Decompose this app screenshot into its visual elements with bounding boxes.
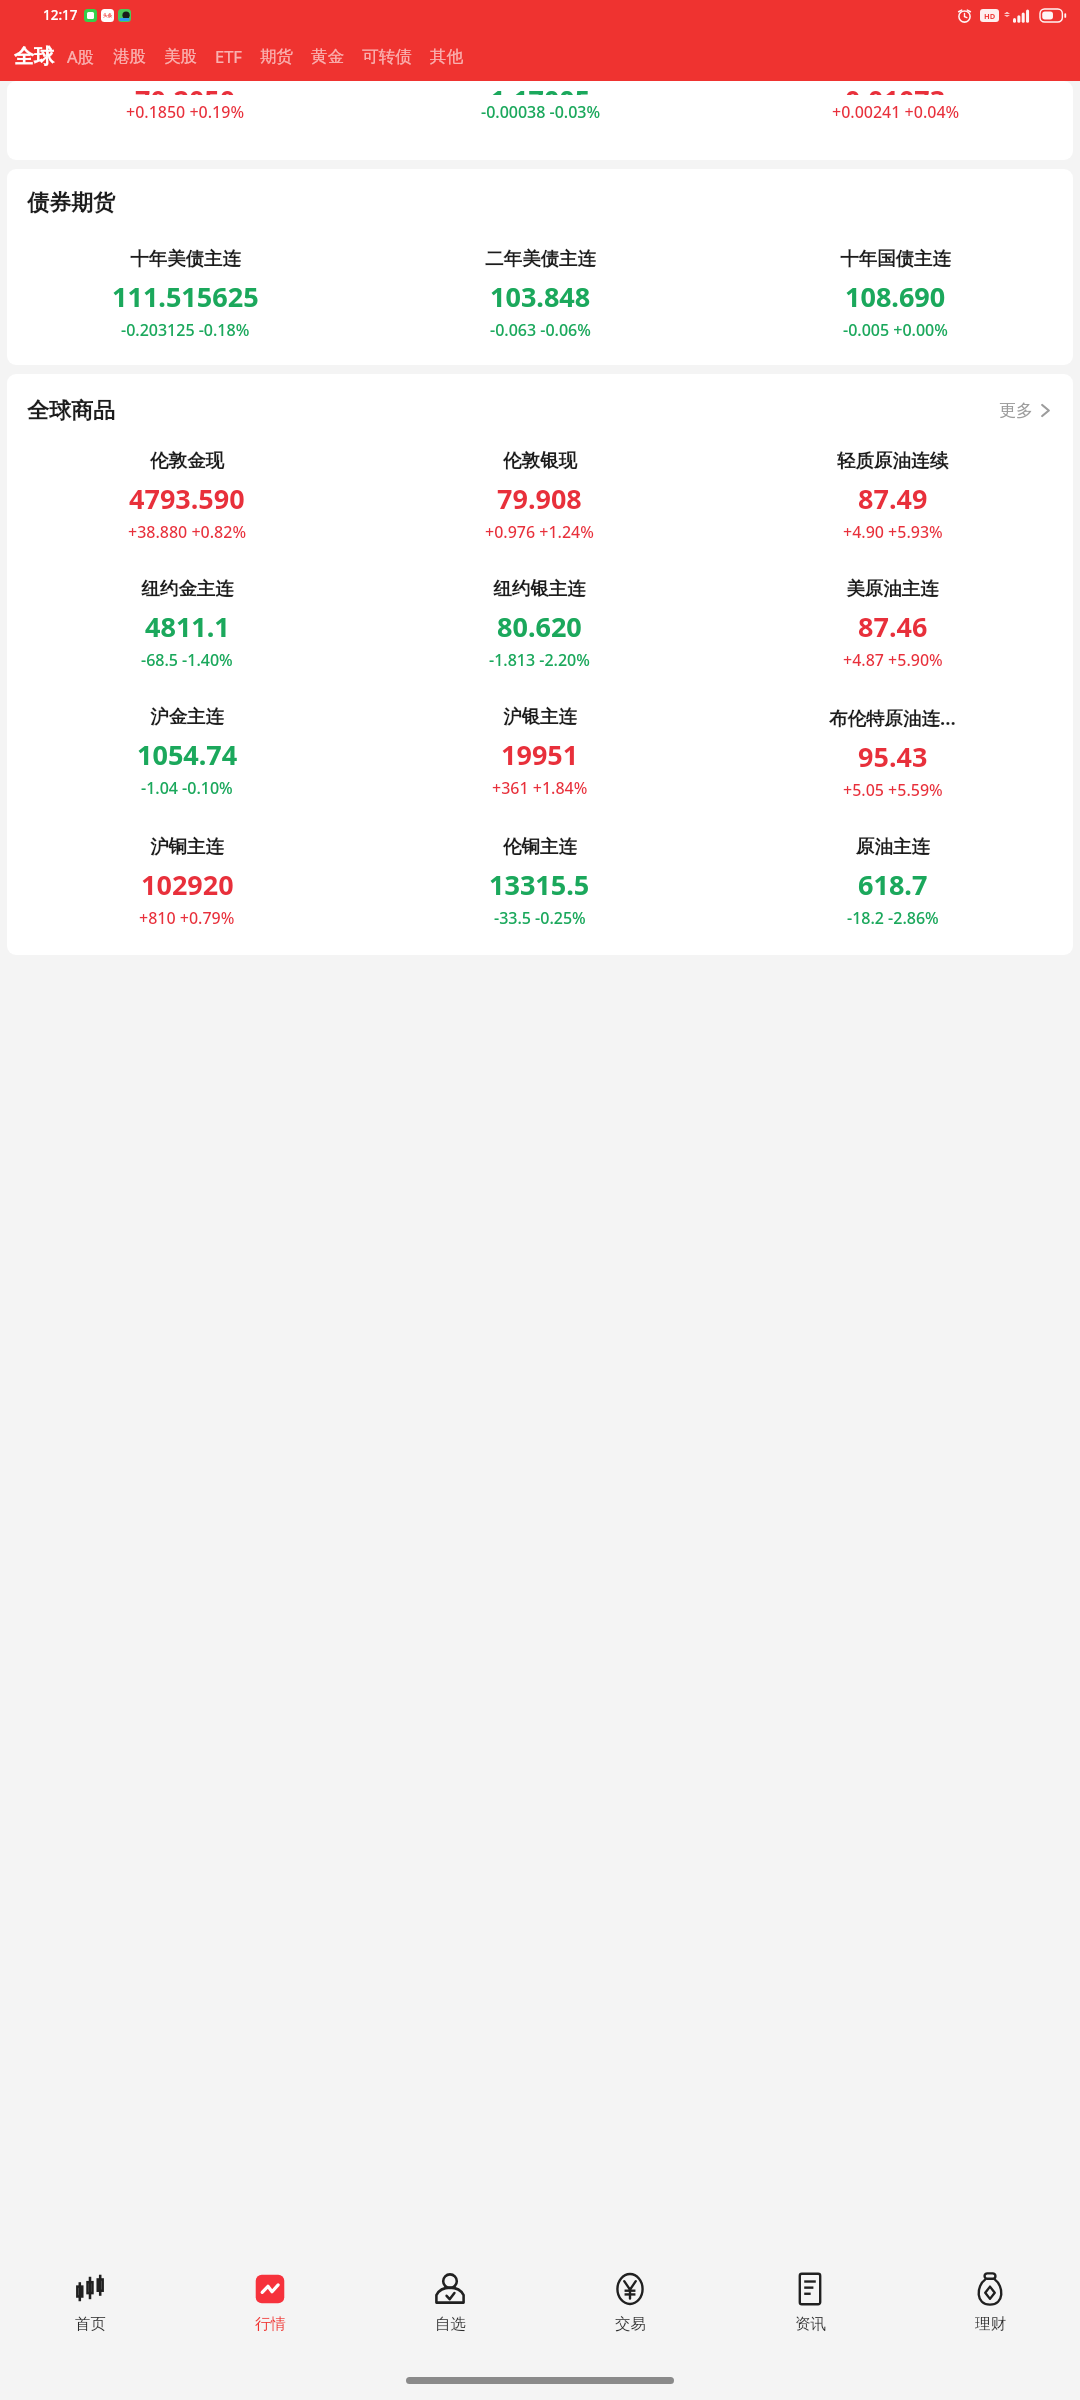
button[interactable]: 沪铜主连	[11, 835, 363, 929]
button[interactable]: 伦铜主连	[363, 835, 716, 929]
staticText: 伦铜主连	[503, 835, 577, 858]
button[interactable]: 纽约银主连	[363, 577, 716, 671]
button[interactable]: 自选	[360, 2266, 540, 2361]
button[interactable]: A股	[58, 39, 104, 74]
staticText: -1.813 -2.20%	[489, 649, 590, 671]
staticText: 伦敦银现	[503, 449, 577, 472]
staticText: 13315.5	[489, 866, 590, 903]
staticText: 19951	[501, 736, 579, 773]
staticText: 1054.74	[137, 736, 238, 773]
staticText: 可转债	[362, 46, 412, 67]
staticText: 沪铜主连	[150, 835, 224, 858]
button[interactable]: 二年美债主连	[363, 247, 718, 341]
staticText: 交易	[615, 2314, 646, 2334]
staticText: 十年国债主连	[840, 247, 951, 270]
staticText: 12:17	[43, 6, 78, 24]
staticText: A股	[67, 45, 95, 68]
staticText: 108.690	[845, 278, 946, 315]
staticText: 纽约金主连	[141, 577, 234, 600]
staticText: 更多	[999, 400, 1033, 421]
staticText: 87.46	[858, 608, 928, 645]
button[interactable]: 理财	[900, 2266, 1080, 2361]
staticText: -0.203125 -0.18%	[121, 319, 250, 341]
staticText: 纽约银主连	[493, 577, 586, 600]
button[interactable]: ETF	[206, 39, 251, 73]
button[interactable]: 可转债	[353, 40, 421, 73]
staticText: 黄金	[311, 46, 344, 67]
staticText: 沪金主连	[150, 705, 224, 728]
button[interactable]: 纽约金主连	[11, 577, 363, 671]
staticText: +810 +0.79%	[139, 907, 235, 929]
staticText: 首页	[75, 2314, 106, 2334]
button[interactable]: 资讯	[720, 2266, 900, 2361]
staticText: 4811.1	[145, 608, 230, 645]
staticText: 期货	[260, 46, 293, 67]
button[interactable]: 0.01073	[718, 81, 1073, 123]
staticText: +0.00241 +0.04%	[832, 101, 960, 123]
staticText: +0.976 +1.24%	[485, 521, 594, 543]
button[interactable]: 首页	[0, 2266, 180, 2361]
staticText: 618.7	[858, 866, 928, 903]
staticText: 0.01073	[845, 81, 946, 95]
staticText: +0.1850 +0.19%	[126, 101, 245, 123]
button[interactable]: 1.17005	[363, 81, 718, 123]
button[interactable]: 十年美债主连	[7, 247, 363, 341]
button[interactable]: 沪银主连	[363, 705, 716, 799]
staticText: 轻质原油连续	[837, 449, 948, 472]
button[interactable]: 轻质原油连续	[716, 449, 1069, 543]
staticText: 债券期货	[27, 189, 115, 217]
staticText: -68.5 -1.40%	[141, 649, 233, 671]
staticText: 头条	[103, 13, 112, 19]
staticText: HD	[984, 11, 996, 21]
button[interactable]: 原油主连	[716, 835, 1069, 929]
staticText: -18.2 -2.86%	[847, 907, 939, 929]
button[interactable]: 期货	[251, 40, 302, 73]
staticText: 美原油主连	[846, 577, 939, 600]
staticText: 美股	[164, 46, 197, 67]
staticText: 伦敦金现	[150, 449, 224, 472]
staticText: 1.17005	[490, 81, 591, 95]
button[interactable]: 布伦特原油连…	[716, 705, 1069, 801]
staticText: 二年美债主连	[485, 247, 596, 270]
staticText: 全球商品	[27, 397, 115, 425]
staticText: 资讯	[795, 2314, 826, 2334]
staticText: 港股	[113, 46, 146, 67]
button[interactable]: 伦敦银现	[363, 449, 716, 543]
staticText: ETF	[215, 45, 242, 67]
button[interactable]: 行情	[180, 2266, 360, 2361]
staticText: 87.49	[858, 480, 928, 517]
staticText: 原油主连	[856, 835, 930, 858]
staticText: -0.00038 -0.03%	[481, 101, 601, 123]
staticText: 自选	[435, 2314, 466, 2334]
button[interactable]: 伦敦金现	[11, 449, 363, 543]
button[interactable]: 沪金主连	[11, 705, 363, 799]
staticText: -33.5 -0.25%	[494, 907, 586, 929]
staticText: 111.515625	[112, 278, 259, 315]
staticText: 79.908	[497, 480, 582, 517]
button[interactable]: 更多	[993, 394, 1057, 427]
button[interactable]: 全球	[10, 40, 58, 73]
button[interactable]: 美原油主连	[716, 577, 1069, 671]
staticText: 其他	[430, 46, 463, 67]
staticText: +5.05 +5.59%	[843, 779, 943, 801]
button[interactable]: 美股	[155, 40, 206, 73]
staticText: 103.848	[490, 278, 591, 315]
staticText: 95.43	[858, 738, 928, 775]
staticText: 理财	[975, 2314, 1006, 2334]
button[interactable]: 港股	[104, 40, 155, 73]
staticText: -0.063 -0.06%	[490, 319, 591, 341]
button[interactable]: 十年国债主连	[718, 247, 1073, 341]
staticText: +4.90 +5.93%	[843, 521, 943, 543]
staticText: 全球	[14, 44, 54, 69]
button[interactable]: 黄金	[302, 40, 353, 73]
staticText: +38.880 +0.82%	[128, 521, 247, 543]
button[interactable]: 其他	[421, 40, 472, 73]
staticText: +4.87 +5.90%	[843, 649, 943, 671]
staticText: 十年美债主连	[130, 247, 241, 270]
button[interactable]: 70.2050	[7, 81, 363, 123]
button[interactable]: 交易	[540, 2266, 720, 2361]
staticText: +361 +1.84%	[492, 777, 588, 799]
staticText: 沪银主连	[503, 705, 577, 728]
staticText: -1.04 -0.10%	[141, 777, 233, 799]
staticText: 102920	[141, 866, 234, 903]
